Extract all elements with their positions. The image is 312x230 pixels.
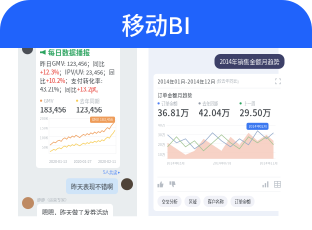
staticText: (较去年同比): [215, 78, 238, 84]
staticText: 2014年02月: [248, 124, 266, 129]
staticText: 交叉分析: [161, 198, 177, 204]
staticText: 2020-02-11: [98, 159, 116, 164]
staticText: +10.2%: [46, 76, 65, 85]
staticText: 123,456: [76, 104, 102, 115]
button[interactable]: 客户名称: [203, 196, 227, 207]
staticText: GMV: [44, 97, 54, 104]
staticText: 5人共读 ▸: [103, 169, 120, 175]
button[interactable]: 交叉分析: [157, 196, 181, 207]
staticText: 比: [40, 76, 46, 85]
button[interactable]: 订单金额: [230, 196, 254, 207]
staticText: 40万: [158, 123, 165, 127]
staticText: 订单金额: [161, 100, 177, 106]
staticText: 43.21%；同比: [40, 85, 77, 93]
button[interactable]: 嗯嗯，昨天做了发券活动: [37, 204, 113, 220]
staticText: 183,456: [40, 104, 66, 115]
staticText: 2014年11月: [259, 161, 277, 165]
button[interactable]: 赞: [157, 181, 163, 187]
staticText: 2020-01-13: [49, 159, 67, 164]
staticText: 100K: [40, 136, 48, 140]
staticText: 静静（运营专家）: [37, 197, 69, 203]
staticText: 36.81万: [157, 106, 189, 119]
staticText: +13.2pt。: [77, 85, 102, 93]
staticText: 订单金额月趋势: [157, 91, 192, 98]
staticText: 2014年01月-2014年12月: [157, 78, 215, 85]
staticText: 2020-01-27: [73, 159, 91, 164]
staticText: 上一周: [243, 100, 255, 106]
staticText: 订单金额: [234, 198, 250, 204]
staticText: 移动BI: [121, 7, 190, 41]
staticText: 150K: [40, 126, 48, 130]
staticText: 30万: [158, 133, 165, 137]
button[interactable]: 切换图表: [262, 181, 268, 187]
staticText: 去年同期: [80, 97, 100, 104]
staticText: 2014年销售金额月趋势: [219, 57, 279, 66]
staticText: 区域: [188, 198, 196, 204]
button[interactable]: 昨天表现不错啊: [66, 178, 118, 194]
staticText: ；IPV/UV: 23,456；同: [59, 68, 115, 76]
staticText: 每日数据播报: [48, 47, 90, 57]
staticText: 29.50万: [239, 106, 271, 119]
staticText: 昨日GMV: 123,456；同比: [40, 59, 105, 67]
staticText: ；支付转化率:: [65, 76, 103, 85]
staticText: 42.04万: [198, 106, 230, 119]
button[interactable]: 切换表格: [274, 181, 280, 187]
button[interactable]: 区域: [184, 196, 200, 207]
staticText: 20万: [158, 142, 165, 147]
staticText: 50K: [42, 145, 48, 150]
staticText: 去年同期: [202, 100, 218, 106]
button[interactable]: 踩: [169, 181, 175, 187]
staticText: 2014年03月: [166, 161, 184, 165]
staticText: 10万: [158, 152, 165, 157]
staticText: 2014年07月: [213, 161, 231, 165]
staticText: 昨天表现不错啊: [71, 182, 113, 191]
staticText: 200K: [40, 117, 48, 121]
staticText: GMV 183,456: [92, 117, 113, 122]
staticText: 嗯嗯，昨天做了发券活动: [42, 207, 108, 216]
staticText: +12.3%: [40, 68, 59, 76]
staticText: 客户名称: [207, 198, 223, 204]
